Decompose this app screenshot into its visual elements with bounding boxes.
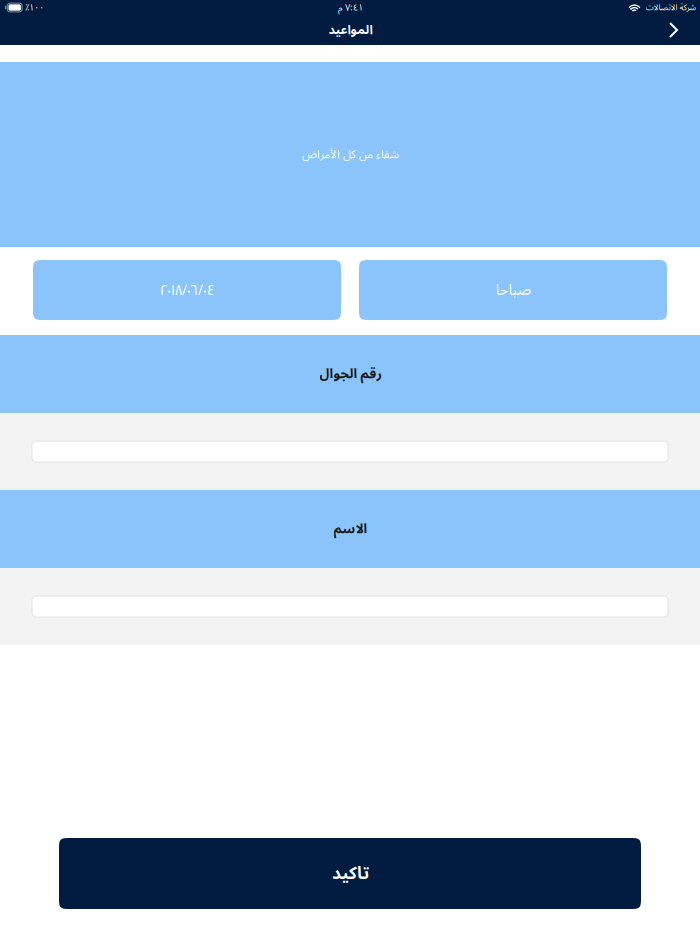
staticText: شركة الاتصالات [645,0,695,16]
button[interactable]: ٢٠١٨/٠٦/٠٤ [33,260,341,320]
staticText: رقم الجوال [319,360,381,388]
staticText: ٧:٤١ م [337,0,362,17]
staticText: ٪١٠٠ [25,0,44,17]
staticText: تاكيد [331,855,368,892]
staticText: الاسم [333,515,367,543]
staticText: شفاء من كل الأمراض [301,142,398,167]
staticText: المواعيد [328,17,372,43]
button[interactable]: صباحا [359,260,667,320]
button[interactable]: تاكيد [59,838,641,909]
button[interactable]: Back [661,19,686,41]
staticText: ٢٠١٨/٠٦/٠٤ [160,282,214,298]
button[interactable]: رقم الجوال [32,441,668,462]
button[interactable]: الاسم [32,596,668,617]
staticText: صباحا [495,274,531,306]
